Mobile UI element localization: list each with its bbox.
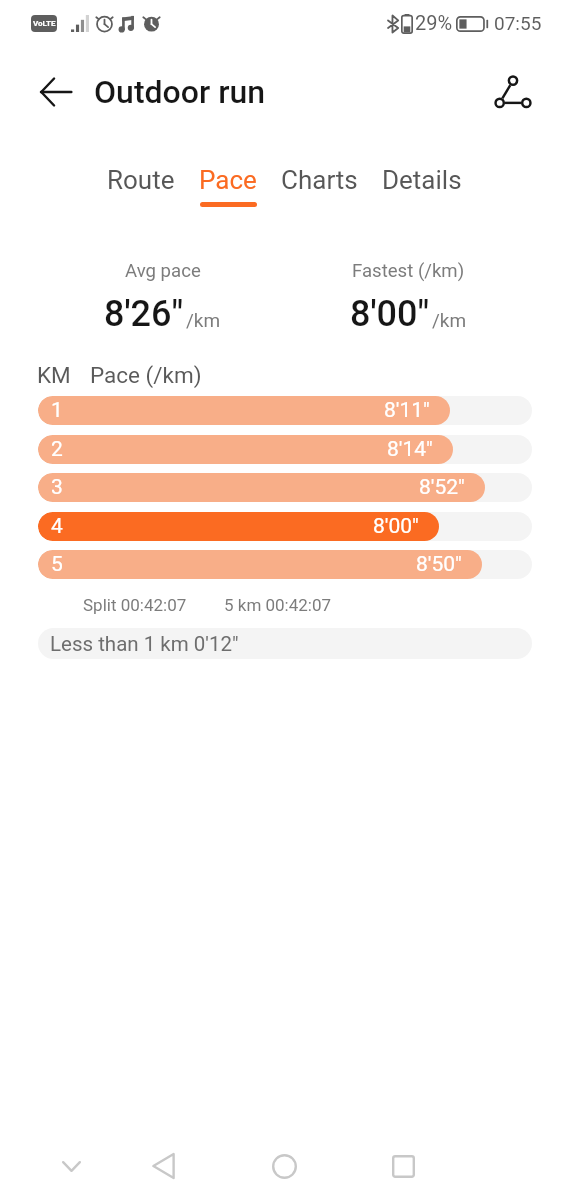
staticText: Charts bbox=[281, 165, 358, 195]
staticText: 8'11" bbox=[384, 398, 430, 423]
button[interactable]: Home bbox=[253, 1143, 315, 1189]
button[interactable]: 1 bbox=[38, 396, 532, 425]
button[interactable]: Share bbox=[485, 64, 541, 120]
staticText: Avg pace bbox=[125, 260, 201, 282]
staticText: /km bbox=[186, 309, 221, 331]
button[interactable]: Details bbox=[370, 165, 474, 207]
button[interactable]: Less than 1 km 0'12" bbox=[38, 628, 532, 659]
staticText: /km bbox=[432, 309, 467, 331]
staticText: 8'00" bbox=[350, 293, 430, 335]
staticText: 3 bbox=[51, 475, 63, 500]
staticText: 8'00" bbox=[373, 514, 419, 539]
staticText: KM bbox=[37, 362, 71, 388]
staticText: 8'14" bbox=[387, 437, 433, 462]
button[interactable]: Back bbox=[132, 1143, 194, 1189]
staticText: 5 bbox=[51, 552, 63, 577]
button[interactable]: Pace bbox=[187, 165, 269, 207]
button[interactable]: 4 bbox=[38, 512, 532, 541]
staticText: VoLTE bbox=[33, 19, 56, 28]
staticText: Pace bbox=[199, 165, 257, 195]
staticText: 4 bbox=[51, 514, 63, 539]
button[interactable]: Back bbox=[31, 67, 81, 117]
button[interactable]: Charts bbox=[269, 165, 370, 207]
staticText: Split 00:42:07 bbox=[83, 595, 187, 615]
staticText: 8'50" bbox=[416, 552, 462, 577]
staticText: Fastest (/km) bbox=[352, 260, 465, 282]
staticText: 2 bbox=[51, 437, 63, 462]
staticText: 8'52" bbox=[419, 475, 465, 500]
staticText: Details bbox=[382, 165, 462, 195]
button[interactable]: Recent apps bbox=[372, 1143, 434, 1189]
button[interactable]: 3 bbox=[38, 473, 532, 502]
button[interactable]: 5 bbox=[38, 550, 532, 579]
staticText: 07:55 bbox=[494, 12, 542, 34]
staticText: 5 km 00:42:07 bbox=[224, 595, 332, 615]
staticText: Pace (/km) bbox=[90, 362, 202, 388]
staticText: Less than 1 km 0'12" bbox=[50, 632, 239, 656]
staticText: Outdoor run bbox=[94, 73, 266, 111]
button[interactable]: 2 bbox=[38, 435, 532, 464]
staticText: Route bbox=[107, 165, 175, 195]
staticText: 1 bbox=[51, 398, 63, 423]
button[interactable]: Route bbox=[95, 165, 187, 207]
button[interactable]: Hide keyboard bbox=[40, 1143, 102, 1189]
staticText: 8'26" bbox=[104, 293, 184, 335]
staticText: 29% bbox=[415, 11, 453, 34]
